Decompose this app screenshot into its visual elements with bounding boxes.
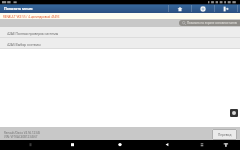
button[interactable]: Перевод <box>212 129 237 140</box>
button[interactable]: Options <box>230 109 238 117</box>
button[interactable]: 42AS Выбор системы <box>0 38 240 48</box>
staticText: 42AE Полная проверка системы <box>7 31 59 35</box>
staticText: RENAULT VKE 55 / 4-цилиндровый 45493 <box>3 15 60 19</box>
staticText: 42AS Выбор системы <box>7 42 41 46</box>
staticText: VIN: VF1KAC40B1234567 <box>4 135 38 139</box>
button[interactable]: Settings <box>192 4 214 13</box>
staticText: Перевод <box>218 133 232 137</box>
staticText: Показать на экране основное меню <box>187 21 238 25</box>
button[interactable]: Exit <box>215 4 237 13</box>
staticText: Renault/Dacia V4.56.12345 <box>4 131 41 135</box>
button[interactable]: 42AE Полная проверка системы <box>0 27 240 37</box>
staticText: Показать меню <box>4 6 33 11</box>
button[interactable]: Home <box>169 4 191 13</box>
